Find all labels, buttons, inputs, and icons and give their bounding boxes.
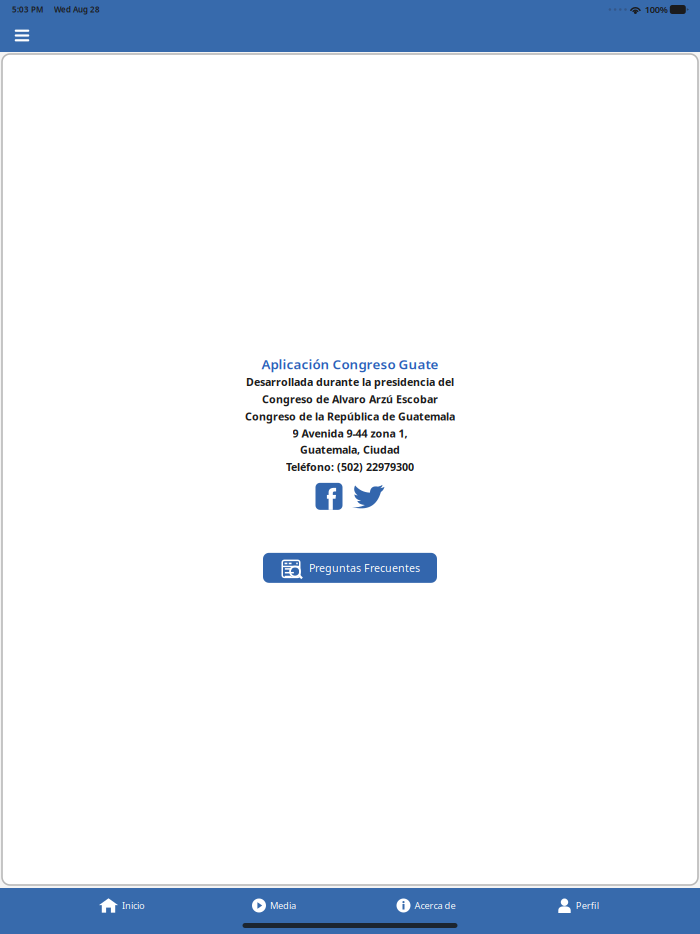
staticText: Inicio [122, 899, 145, 912]
button[interactable]: Twitter [351, 484, 384, 509]
staticText: Congreso de la República de Guatemala [245, 409, 455, 423]
button[interactable]: Preguntas Frecuentes [263, 553, 437, 583]
staticText: Desarrollada durante la presidencia del [246, 375, 454, 389]
button[interactable]: Acerca de [350, 892, 502, 919]
staticText: Guatemala, Ciudad [300, 442, 400, 457]
staticText: Perfil [576, 899, 599, 912]
staticText: Congreso de Alvaro Arzú Escobar [262, 392, 438, 406]
staticText: Aplicación Congreso Guate [261, 355, 438, 373]
staticText: 100% [645, 3, 668, 16]
staticText: 5:03 PM [12, 4, 43, 15]
staticText: Media [270, 899, 296, 912]
staticText: Acerca de [414, 899, 455, 912]
staticText: Teléfono: (502) 22979300 [286, 460, 414, 474]
staticText: Preguntas Frecuentes [309, 561, 420, 575]
staticText: 9 Avenida 9-44 zona 1, [292, 426, 407, 441]
staticText: Wed Aug 28 [54, 4, 100, 15]
button[interactable]: Inicio [46, 892, 198, 919]
button[interactable]: Menu [4, 19, 40, 51]
button[interactable]: Perfil [502, 892, 654, 919]
button[interactable]: Media [198, 892, 350, 919]
button[interactable]: Facebook [315, 483, 342, 510]
